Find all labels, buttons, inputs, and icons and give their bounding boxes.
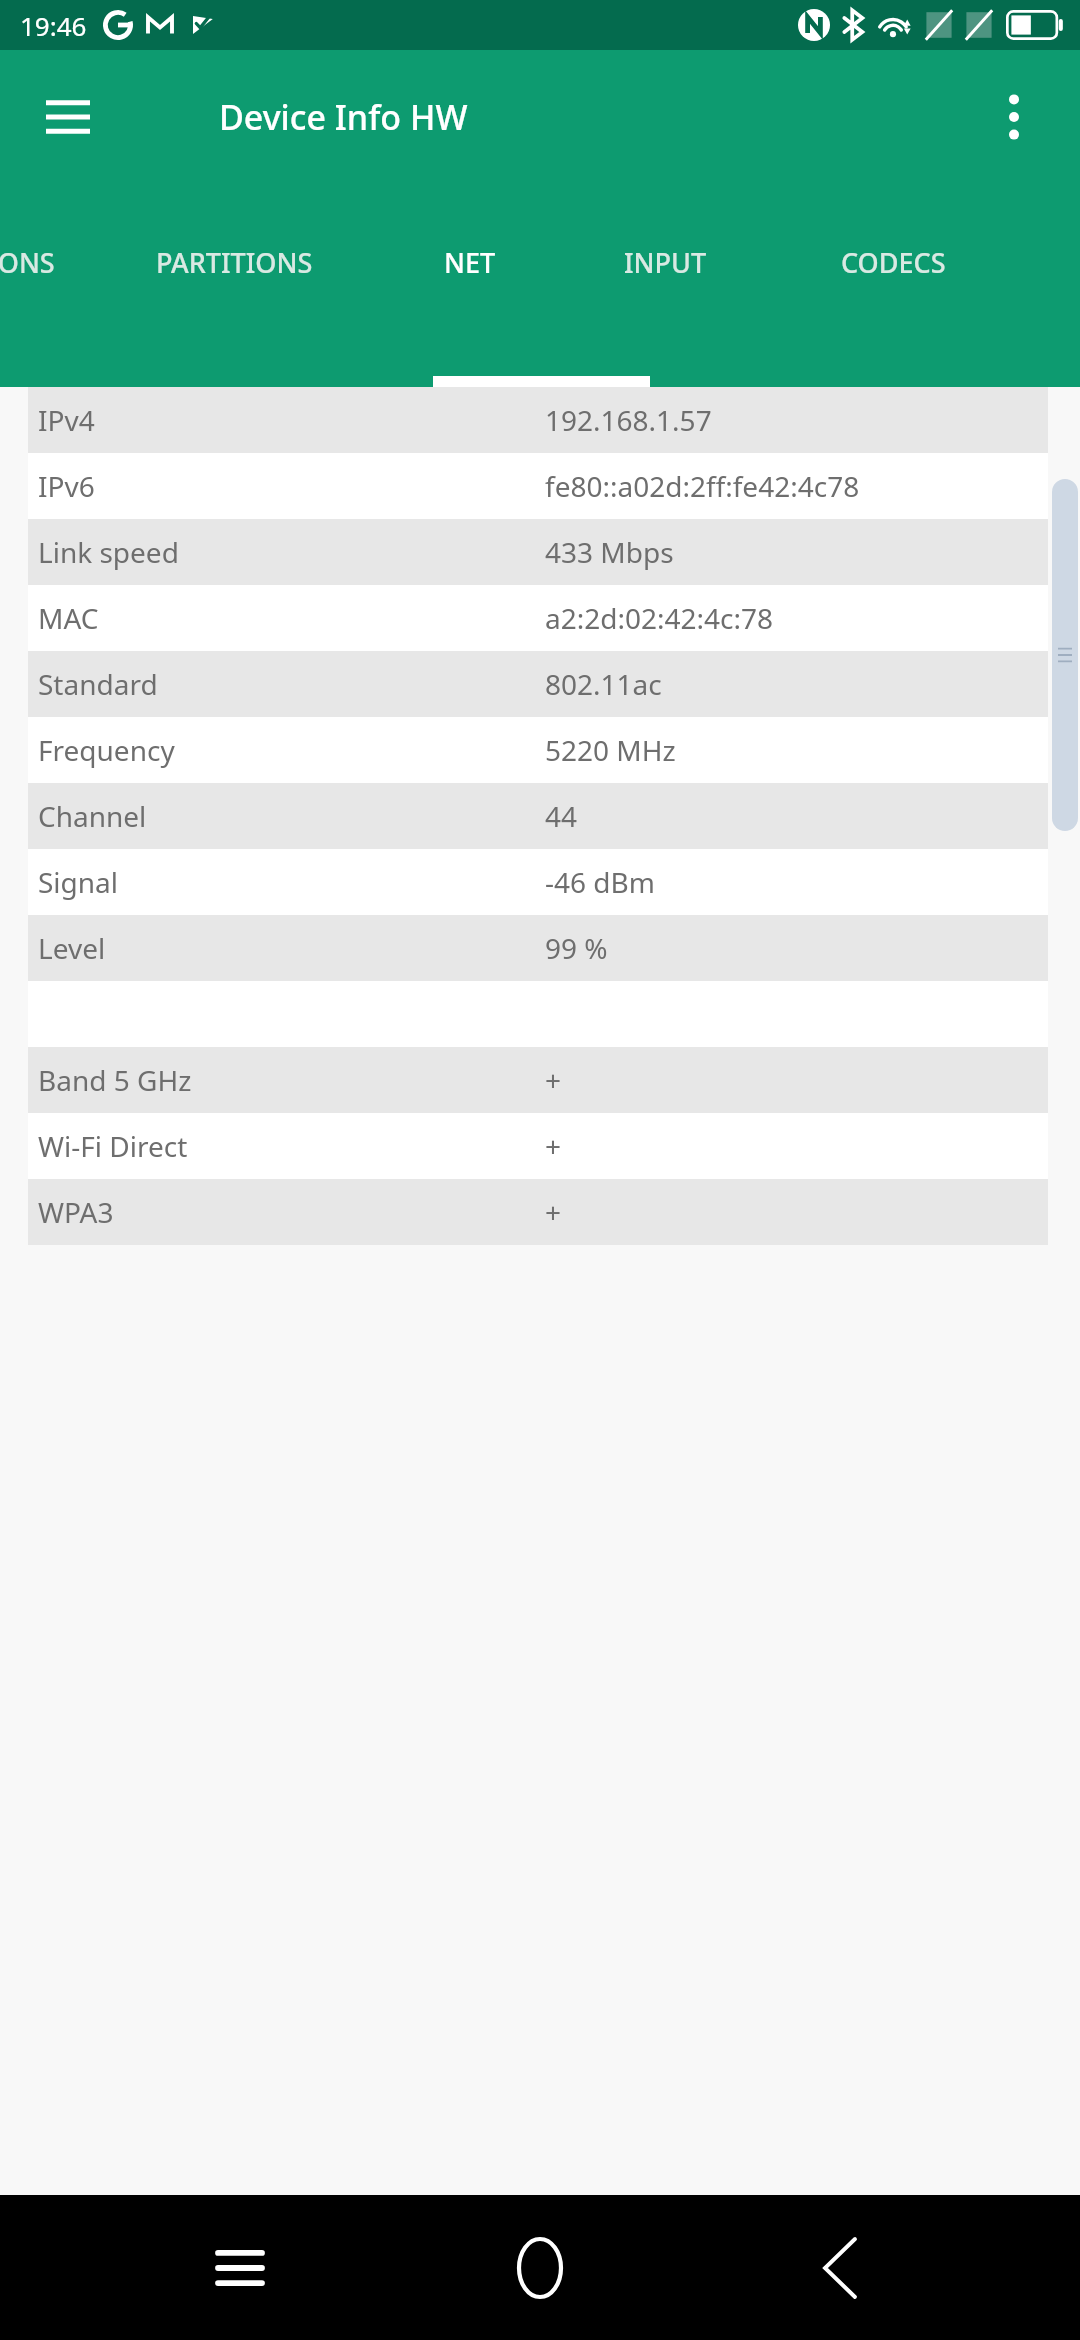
staticText: Channel [38, 797, 147, 835]
button[interactable]: Band 5 GHz [28, 1047, 1048, 1113]
staticText: a2:2d:02:42:4c:78 [545, 599, 774, 637]
staticText: 44 [545, 797, 578, 835]
button[interactable]: Signal [28, 849, 1048, 915]
staticText: IPv4 [38, 401, 95, 439]
staticText: MAC [38, 599, 99, 637]
button[interactable]: CODECS [753, 183, 993, 387]
staticText: 192.168.1.57 [545, 401, 712, 439]
staticText: + [545, 1061, 562, 1099]
button[interactable]: PARTITIONS [108, 183, 361, 387]
button[interactable]: WPA3 [28, 1179, 1048, 1245]
button[interactable]: Scroll bar [1052, 479, 1078, 831]
staticText: IPv6 [38, 467, 95, 505]
button[interactable]: Back [780, 2208, 900, 2328]
staticText: Band 5 GHz [38, 1061, 192, 1099]
staticText: Link speed [38, 533, 179, 571]
staticText: 19:46 [20, 8, 87, 43]
staticText: + [545, 1127, 562, 1165]
button[interactable]: INPUT [578, 183, 753, 387]
staticText: 802.11ac [545, 665, 662, 703]
button[interactable]: NET [361, 183, 578, 387]
button[interactable]: Home [480, 2208, 600, 2328]
button[interactable]: Standard [28, 651, 1048, 717]
button[interactable]: Open navigation drawer [30, 79, 106, 155]
button[interactable]: Channel [28, 783, 1048, 849]
staticText: Signal [38, 863, 119, 901]
staticText: Level [38, 929, 106, 967]
staticText: Wi-Fi Direct [38, 1127, 188, 1165]
staticText: Device Info HW [219, 94, 468, 140]
staticText: 433 Mbps [545, 533, 674, 571]
button[interactable]: Frequency [28, 717, 1048, 783]
staticText: 5220 MHz [545, 731, 676, 769]
button[interactable]: MAC [28, 585, 1048, 651]
staticText: 99 % [545, 929, 608, 967]
button[interactable]: Wi-Fi Direct [28, 1113, 1048, 1179]
button[interactable]: More options [976, 79, 1052, 155]
staticText: -46 dBm [545, 863, 655, 901]
button[interactable]: Level [28, 915, 1048, 981]
button[interactable]: Recent apps [180, 2208, 300, 2328]
staticText: CODECS [841, 244, 946, 281]
staticText: Standard [38, 665, 158, 703]
staticText: TIONS [0, 244, 55, 281]
button[interactable]: TIONS [0, 183, 108, 387]
staticText: PARTITIONS [156, 244, 313, 281]
staticText: WPA3 [38, 1193, 114, 1231]
staticText: INPUT [624, 244, 707, 281]
staticText: Frequency [38, 731, 175, 769]
button[interactable]: IPv4 [28, 387, 1048, 453]
staticText: fe80::a02d:2ff:fe42:4c78 [545, 467, 860, 505]
button[interactable]: IPv6 [28, 453, 1048, 519]
staticText: NET [444, 244, 496, 281]
staticText: + [545, 1193, 562, 1231]
button[interactable]: Link speed [28, 519, 1048, 585]
